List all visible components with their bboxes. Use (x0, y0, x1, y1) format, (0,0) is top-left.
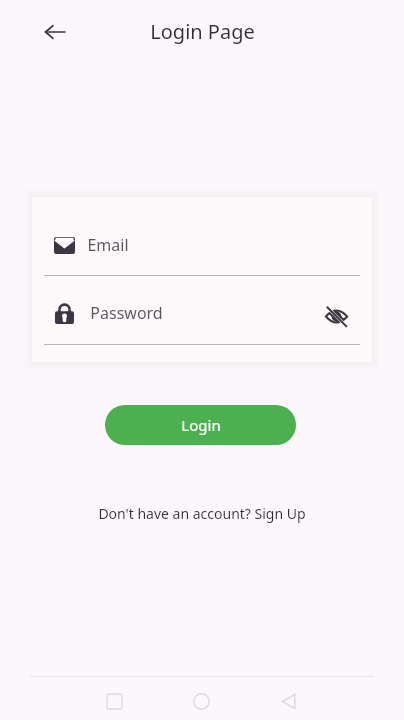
staticText: Login Page (150, 18, 255, 45)
button[interactable]: Password (32, 289, 372, 344)
staticText: Email (87, 234, 129, 256)
button[interactable]: Back (35, 12, 75, 52)
button[interactable]: Don't have an account? Sign Up (90, 500, 314, 527)
button[interactable]: Home (181, 681, 221, 720)
button[interactable]: Login (105, 405, 296, 445)
staticText: Don't have an account? Sign Up (98, 504, 306, 523)
staticText: Login (181, 415, 221, 435)
button[interactable]: Recent apps (94, 681, 134, 720)
staticText: Password (90, 302, 163, 324)
button[interactable]: Email (32, 221, 372, 276)
button[interactable]: Show password (315, 295, 357, 337)
button[interactable]: Back (268, 681, 308, 720)
